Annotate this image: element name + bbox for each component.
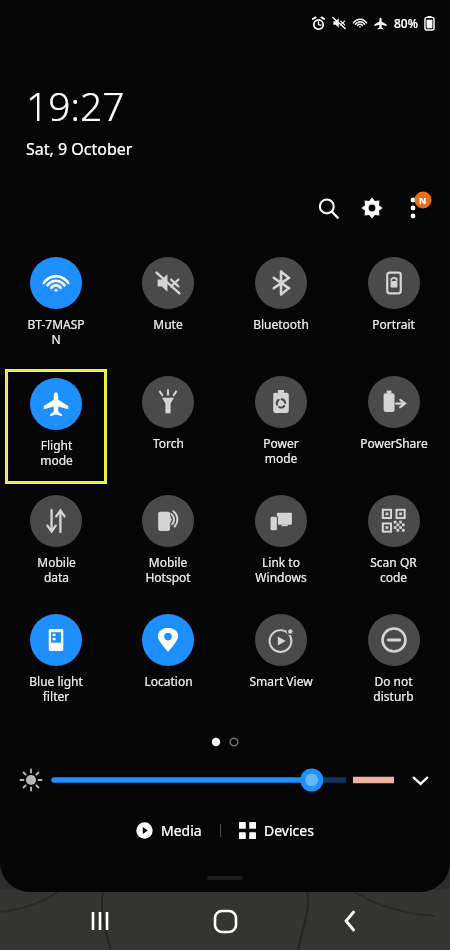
staticText: Mute [153, 316, 183, 332]
button[interactable]: Mobile data [0, 486, 112, 605]
button[interactable]: Smart View [224, 605, 337, 724]
button[interactable]: Portrait [337, 248, 450, 367]
button[interactable]: Media [126, 816, 212, 845]
staticText: 19:27 [26, 79, 125, 132]
staticText: Power mode [263, 435, 299, 466]
staticText: Smart View [249, 673, 313, 689]
button[interactable]: Scan QR code [337, 486, 450, 605]
staticText: Sat, 9 October [26, 138, 133, 160]
button[interactable]: More options [394, 186, 438, 230]
staticText: Do not disturb [373, 673, 414, 704]
staticText: Mobile Hotspot [145, 554, 191, 585]
button[interactable]: Blue light filter [0, 605, 112, 724]
button[interactable]: Torch [112, 367, 224, 486]
staticText: Location [144, 673, 193, 689]
button[interactable]: Expand brightness options [402, 762, 438, 798]
staticText: Flight mode [40, 437, 73, 468]
staticText: Torch [153, 435, 184, 451]
staticText: N [419, 194, 427, 206]
staticText: Media [161, 821, 202, 840]
staticText: 80% [394, 15, 418, 31]
button[interactable]: Back [325, 896, 375, 946]
button[interactable]: Search [306, 186, 350, 230]
staticText: Mobile data [37, 554, 76, 585]
button[interactable] [52, 758, 396, 802]
button[interactable]: PowerShare [337, 367, 450, 486]
button[interactable]: Settings [350, 186, 394, 230]
button[interactable]: Mobile Hotspot [112, 486, 224, 605]
staticText: Blue light filter [29, 673, 83, 704]
staticText: BT-7MASP N [27, 316, 85, 347]
button[interactable]: Devices [229, 816, 324, 845]
staticText: Bluetooth [253, 316, 309, 332]
button[interactable]: Location [112, 605, 224, 724]
button[interactable]: Recents [75, 896, 125, 946]
button[interactable]: Flight mode [5, 369, 107, 484]
staticText: Devices [264, 821, 314, 840]
staticText: Link to Windows [255, 554, 307, 585]
button[interactable]: BT-7MASP N [0, 248, 112, 367]
button[interactable]: Bluetooth [224, 248, 337, 367]
button[interactable]: Do not disturb [337, 605, 450, 724]
staticText: Portrait [372, 316, 415, 332]
staticText: PowerShare [360, 435, 428, 451]
staticText: Scan QR code [370, 554, 417, 585]
button[interactable]: Mute [112, 248, 224, 367]
button[interactable]: Home [200, 896, 250, 946]
button[interactable]: Link to Windows [224, 486, 337, 605]
button[interactable]: Power mode [224, 367, 337, 486]
